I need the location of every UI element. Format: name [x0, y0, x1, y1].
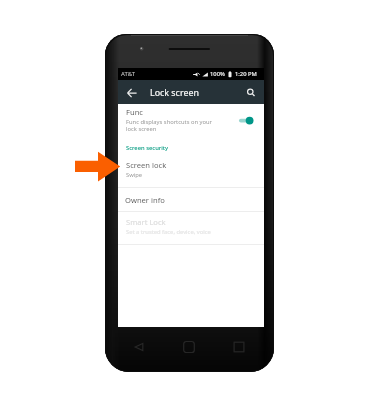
button[interactable]: Navigate up: [124, 85, 139, 100]
staticText: 100%: [210, 70, 225, 78]
button[interactable]: Screen lock: [118, 156, 264, 183]
staticText: Smart Lock: [126, 217, 166, 227]
staticText: Set a trusted face, device, voice: [126, 228, 211, 236]
staticText: Screen lock: [126, 160, 167, 170]
staticText: Func displays shortcuts on your lock scr…: [126, 118, 218, 133]
button[interactable]: Toggle Func: [118, 104, 264, 140]
button[interactable]: Home: [178, 336, 200, 358]
staticText: AT&T: [121, 70, 135, 78]
staticText: Lock screen: [150, 86, 199, 98]
button[interactable]: Owner info: [118, 188, 264, 211]
staticText: Func: [126, 107, 143, 117]
staticText: Swipe: [126, 171, 143, 179]
staticText: 1:20 PM: [235, 70, 257, 78]
button[interactable]: Back: [128, 336, 150, 358]
button[interactable]: Search: [244, 85, 259, 100]
staticText: Owner info: [125, 195, 165, 205]
staticText: Screen security: [126, 144, 169, 152]
button[interactable]: Recent apps: [228, 336, 250, 358]
button[interactable]: Smart Lock: [118, 212, 264, 244]
